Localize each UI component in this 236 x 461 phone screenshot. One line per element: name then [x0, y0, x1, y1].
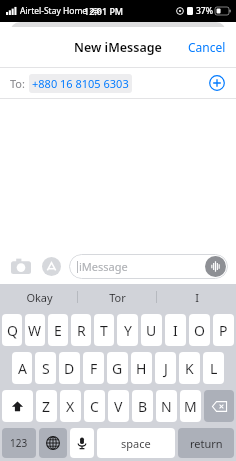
- staticText: R: [77, 321, 86, 340]
- button[interactable]: B: [132, 390, 153, 422]
- button[interactable]: 123: [2, 428, 36, 458]
- staticText: Y: [124, 321, 132, 340]
- button[interactable]: Y: [117, 314, 138, 346]
- button[interactable]: V: [108, 390, 129, 422]
- button[interactable]: O: [189, 314, 210, 346]
- staticText: H: [136, 359, 147, 378]
- button[interactable]: iMessage: [69, 254, 228, 279]
- staticText: Z: [42, 397, 51, 416]
- button[interactable]: space: [97, 428, 175, 458]
- staticText: B: [138, 397, 148, 416]
- button[interactable]: D: [59, 352, 80, 384]
- button[interactable]: Backspace: [204, 390, 234, 422]
- button[interactable]: L: [203, 352, 224, 384]
- staticText: L: [210, 359, 218, 378]
- staticText: 12:01 PM: [84, 5, 124, 17]
- staticText: U: [146, 321, 157, 340]
- staticText: 37%: [196, 5, 213, 17]
- button[interactable]: M: [180, 390, 201, 422]
- staticText: space: [121, 436, 151, 451]
- button[interactable]: E: [48, 314, 68, 346]
- staticText: I: [195, 290, 199, 305]
- button[interactable]: C: [84, 390, 105, 422]
- button[interactable]: Cancel: [178, 31, 236, 63]
- button[interactable]: A: [12, 352, 32, 384]
- staticText: Okay: [26, 290, 53, 305]
- staticText: Q: [7, 321, 18, 340]
- button[interactable]: Shift: [2, 390, 33, 422]
- button[interactable]: Z: [36, 390, 57, 422]
- staticText: J: [164, 359, 168, 378]
- staticText: return: [190, 436, 223, 451]
- button[interactable]: S: [35, 352, 56, 384]
- button[interactable]: P: [213, 314, 234, 346]
- staticText: A: [18, 359, 27, 378]
- button[interactable]: G: [107, 352, 128, 384]
- button[interactable]: W: [25, 314, 45, 346]
- button[interactable]: App Store: [38, 253, 64, 279]
- button[interactable]: Change keyboard: [39, 428, 67, 458]
- button[interactable]: Tor: [78, 284, 157, 310]
- button[interactable]: R: [71, 314, 91, 346]
- staticText: Tor: [109, 290, 126, 305]
- staticText: Cancel: [188, 39, 226, 55]
- button[interactable]: K: [179, 352, 200, 384]
- button[interactable]: Record audio message: [205, 256, 226, 277]
- button[interactable]: Camera: [8, 253, 34, 279]
- button[interactable]: X: [60, 390, 81, 422]
- button[interactable]: return: [178, 428, 234, 458]
- staticText: G: [112, 359, 123, 378]
- staticText: M: [184, 397, 197, 416]
- staticText: P: [219, 321, 228, 340]
- button[interactable]: Okay: [0, 284, 78, 310]
- staticText: Airtel-Stay Home: [20, 5, 88, 17]
- staticText: W: [28, 321, 42, 340]
- staticText: E: [54, 321, 62, 340]
- staticText: K: [185, 359, 194, 378]
- button[interactable]: N: [156, 390, 177, 422]
- button[interactable]: Add contact: [204, 70, 230, 96]
- staticText: C: [90, 397, 99, 416]
- staticText: X: [66, 397, 75, 416]
- staticText: To:: [10, 76, 25, 91]
- button[interactable]: Dictation: [70, 428, 94, 458]
- staticText: O: [194, 321, 205, 340]
- button[interactable]: +880 16 8105 6303: [29, 74, 132, 93]
- staticText: V: [114, 397, 123, 416]
- staticText: I: [173, 321, 178, 340]
- button[interactable]: I: [165, 314, 186, 346]
- staticText: iMessage: [79, 259, 128, 274]
- staticText: F: [90, 359, 98, 378]
- staticText: New iMessage: [74, 39, 162, 56]
- button[interactable]: I: [157, 284, 236, 310]
- staticText: T: [100, 321, 108, 340]
- staticText: D: [64, 359, 75, 378]
- button[interactable]: U: [141, 314, 162, 346]
- staticText: 123: [10, 436, 28, 450]
- button[interactable]: T: [94, 314, 114, 346]
- button[interactable]: F: [83, 352, 104, 384]
- button[interactable]: J: [155, 352, 176, 384]
- staticText: +880 16 8105 6303: [32, 76, 129, 91]
- staticText: S: [42, 359, 50, 378]
- staticText: N: [161, 397, 172, 416]
- button[interactable]: Q: [2, 314, 22, 346]
- button[interactable]: H: [131, 352, 152, 384]
